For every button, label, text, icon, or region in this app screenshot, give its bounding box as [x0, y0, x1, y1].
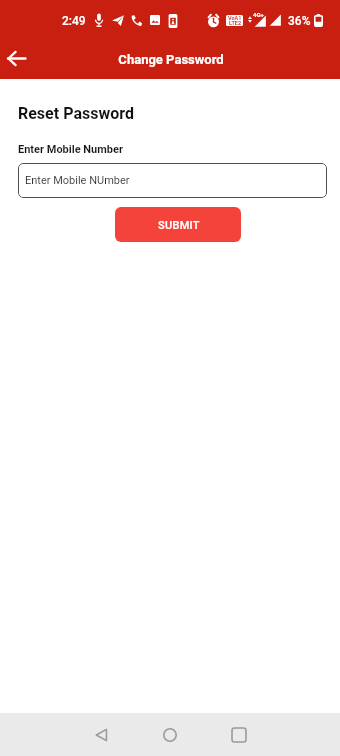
button[interactable]: Enter Mobile NUmber	[18, 163, 327, 198]
staticText: 36%	[288, 14, 311, 28]
staticText: Reset Password	[18, 104, 134, 123]
button[interactable]: Home	[149, 713, 191, 756]
button[interactable]: Back	[80, 713, 122, 756]
staticText: LTE2	[229, 20, 242, 25]
staticText: Enter Mobile Number	[18, 143, 123, 156]
staticText: VoA1	[228, 15, 242, 21]
button[interactable]: Recent apps	[218, 713, 260, 756]
staticText: 4G+	[253, 11, 264, 18]
staticText: 2:49	[62, 14, 86, 28]
button[interactable]: SUBMIT	[115, 207, 241, 242]
staticText: Change Password	[118, 52, 224, 67]
staticText: SUBMIT	[158, 219, 200, 232]
staticText: Enter Mobile NUmber	[25, 174, 130, 187]
button[interactable]: Navigate back	[0, 43, 33, 74]
